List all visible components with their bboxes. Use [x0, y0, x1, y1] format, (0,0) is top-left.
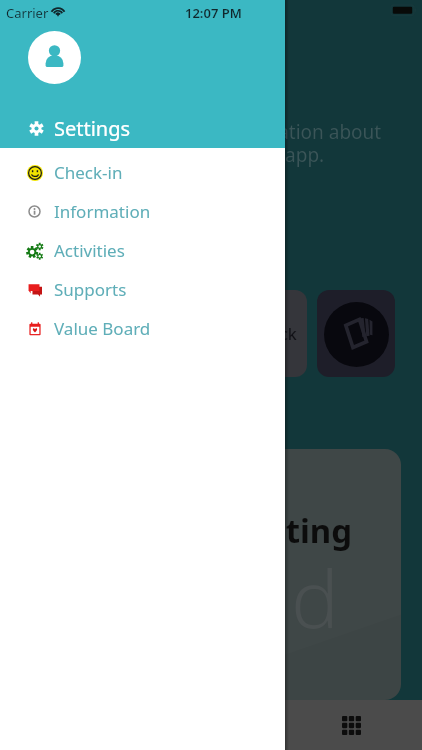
staticText: Deck	[259, 323, 297, 345]
staticText: Interesting	[167, 508, 353, 553]
staticText: how to use this app.	[145, 142, 325, 168]
staticText: Activities	[54, 239, 125, 262]
staticText: Check-in	[54, 161, 123, 184]
button[interactable]: Information	[0, 192, 285, 231]
button[interactable]: Cards	[317, 290, 395, 377]
button[interactable]: Profile	[28, 31, 81, 84]
button[interactable]: Activities	[0, 231, 285, 270]
staticText: Supports	[54, 278, 127, 301]
button[interactable]: Check-in	[0, 153, 285, 192]
button[interactable]: Settings	[0, 109, 285, 148]
button[interactable]: Apps	[327, 700, 375, 750]
button[interactable]: Supports	[0, 270, 285, 309]
button[interactable]: Deck	[229, 290, 307, 377]
staticText: Here is some information about	[97, 119, 382, 145]
button[interactable]: Value Board	[0, 309, 285, 348]
staticText: 12:07 PM	[185, 4, 242, 22]
staticText: Carrier	[6, 4, 49, 22]
staticText: Value Board	[54, 317, 151, 340]
staticText: Information	[54, 200, 151, 223]
staticText: d	[291, 542, 339, 651]
staticText: Settings	[54, 115, 131, 142]
